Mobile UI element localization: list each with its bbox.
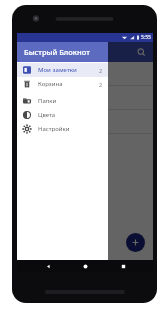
staticText: 2019-11-03 20:34:07 xyxy=(25,70,82,78)
button[interactable]: Корзина xyxy=(17,77,108,91)
staticText: Корзина xyxy=(38,80,63,88)
staticText: 5:55 xyxy=(141,34,151,41)
staticText: 2019-11-03 20:34:07 xyxy=(25,94,82,102)
button[interactable]: Add note xyxy=(126,233,145,252)
staticText: Быстрый Блокнот xyxy=(24,47,90,57)
button[interactable]: Мои заметки xyxy=(17,63,108,77)
staticText: 2019-11-03 20:34:07 xyxy=(25,118,82,126)
staticText: Цвета xyxy=(38,111,56,119)
staticText: Папки xyxy=(38,97,57,105)
staticText: 2 xyxy=(99,67,103,74)
button[interactable]: Back xyxy=(41,260,55,272)
button[interactable]: Recents xyxy=(116,260,130,272)
staticText: Быстрый Блокнот xyxy=(24,47,90,57)
button[interactable]: 2019-11-03 20:34:07 xyxy=(17,110,153,133)
button[interactable]: Search xyxy=(133,44,149,60)
button[interactable]: 2019-11-03 20:34:07 xyxy=(17,62,153,85)
button[interactable]: Настройки xyxy=(17,122,108,136)
button[interactable]: Цвета xyxy=(17,108,108,122)
button[interactable]: Папки xyxy=(17,94,108,108)
button[interactable]: Home xyxy=(78,260,92,272)
staticText: 2 xyxy=(99,81,103,88)
button[interactable] xyxy=(17,42,153,260)
staticText: Настройки xyxy=(38,125,70,133)
button[interactable]: 2019-11-03 20:34:07 xyxy=(17,86,153,109)
staticText: Мои заметки xyxy=(38,66,77,74)
